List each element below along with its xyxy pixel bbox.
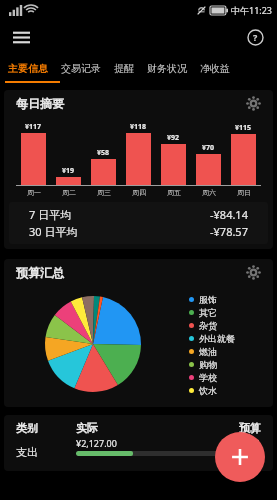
staticText: 6月25 (241, 457, 261, 467)
staticText: 交易记录 (61, 62, 101, 75)
staticText: ¥2,127.00 (76, 437, 117, 449)
staticText: 杂货 (199, 320, 217, 331)
staticText: 周四 (132, 188, 146, 197)
staticText: 其它 (199, 307, 217, 318)
button[interactable]: 交易记录 (61, 62, 101, 75)
staticText: 预算汇总 (16, 265, 64, 280)
staticText: ¥1 (250, 437, 261, 449)
staticText: 类别 (16, 421, 38, 435)
button[interactable]: Menu (6, 22, 36, 52)
staticText: ¥115 (235, 123, 252, 133)
button[interactable]: 预算汇总 (4, 259, 273, 407)
staticText: ¥117 (25, 122, 42, 132)
staticText: 主要信息 (8, 62, 48, 75)
staticText: 7 日平均 (29, 207, 72, 222)
staticText: 购物 (199, 359, 217, 370)
button[interactable]: 类别 (4, 415, 273, 471)
staticText: 周三 (97, 188, 111, 197)
staticText: 净收益 (200, 62, 230, 75)
staticText: 周六 (202, 188, 216, 197)
staticText: ¥118 (130, 122, 147, 132)
staticText: ? (253, 31, 258, 43)
staticText: 周二 (62, 188, 76, 197)
button[interactable]: 每日摘要 (4, 90, 273, 249)
staticText: 财务状况 (147, 62, 187, 75)
staticText: ¥92 (167, 133, 180, 143)
button[interactable]: Add transaction (215, 432, 265, 482)
button[interactable]: Settings (242, 92, 264, 114)
staticText: ¥58 (97, 148, 110, 158)
staticText: 饮水 (199, 385, 217, 396)
staticText: -¥84.14 (210, 207, 248, 222)
staticText: -¥78.57 (210, 224, 248, 239)
button[interactable]: Settings (242, 261, 264, 283)
staticText: 周五 (167, 188, 181, 197)
staticText: 外出就餐 (199, 333, 235, 344)
staticText: 提醒 (114, 62, 134, 75)
button[interactable]: 提醒 (114, 62, 134, 75)
staticText: 周日 (237, 188, 251, 197)
staticText: 支出 (16, 445, 38, 459)
staticText: ¥70 (202, 143, 215, 153)
button[interactable]: 财务状况 (147, 62, 187, 75)
staticText: 中午11:23 (231, 4, 273, 16)
staticText: ¥19 (62, 166, 75, 176)
button[interactable]: Help (240, 22, 270, 52)
staticText: 服饰 (199, 294, 217, 305)
button[interactable]: 主要信息 (8, 62, 48, 75)
staticText: 实际 (76, 421, 98, 435)
staticText: 学校 (199, 372, 217, 383)
staticText: 周一 (27, 188, 41, 197)
staticText: 每日摘要 (16, 96, 64, 111)
button[interactable]: 净收益 (200, 62, 230, 75)
staticText: 预算 (239, 421, 261, 435)
staticText: 燃油 (199, 346, 217, 357)
staticText: 30 日平均 (29, 224, 78, 239)
